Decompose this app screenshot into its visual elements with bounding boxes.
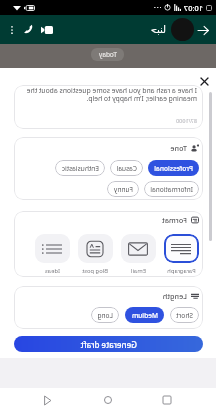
button[interactable]: Contact photo <box>171 18 194 41</box>
staticText: ⋯ <box>154 3 162 12</box>
staticText: Long <box>97 311 113 320</box>
button[interactable]: I have a rash and you have some question… <box>14 85 203 129</box>
button[interactable]: Funny <box>107 181 139 197</box>
button[interactable]: Long <box>91 307 119 323</box>
button[interactable]: More options <box>5 23 19 37</box>
button[interactable]: Medium <box>125 307 164 323</box>
button[interactable]: Enthusiastic <box>55 160 105 176</box>
button[interactable]: Generate draft <box>14 336 203 352</box>
button[interactable]: Recent apps <box>156 389 178 411</box>
staticText: Tone <box>170 143 187 153</box>
button[interactable] <box>78 234 113 263</box>
staticText: 10:07 <box>183 3 203 13</box>
button[interactable]: Voice call <box>19 20 38 39</box>
staticText: Paragraph <box>167 267 196 275</box>
button[interactable]: Home <box>97 389 119 411</box>
staticText: Email <box>131 267 146 275</box>
button[interactable] <box>35 234 70 263</box>
staticText: Funny <box>113 185 133 194</box>
staticText: 87/1000 <box>176 117 197 124</box>
button[interactable] <box>121 234 156 263</box>
button[interactable]: Close <box>198 74 212 88</box>
staticText: Informational <box>150 185 193 194</box>
staticText: Short <box>176 311 193 320</box>
staticText: Enthusiastic <box>61 164 99 173</box>
staticText: Generate draft <box>80 339 137 350</box>
button[interactable]: Casual <box>110 160 143 176</box>
staticText: Professional <box>154 164 193 173</box>
staticText: Medium <box>131 311 158 320</box>
staticText: Casual <box>116 164 137 173</box>
button[interactable] <box>164 234 199 263</box>
button[interactable]: Back <box>37 389 59 411</box>
staticText: Format <box>162 215 187 225</box>
button[interactable]: Short <box>170 307 199 323</box>
button[interactable]: Back <box>195 21 213 39</box>
button[interactable]: Professional <box>148 160 199 176</box>
staticText: Length <box>162 291 187 301</box>
staticText: Ideas <box>45 267 60 275</box>
staticText: I have a rash and you have some question… <box>20 86 197 103</box>
button[interactable]: Informational <box>144 181 199 197</box>
staticText: Blog post <box>82 267 108 275</box>
staticText: حبنا <box>150 24 166 36</box>
button[interactable]: Video call <box>38 20 57 39</box>
staticText: Today <box>98 50 117 59</box>
